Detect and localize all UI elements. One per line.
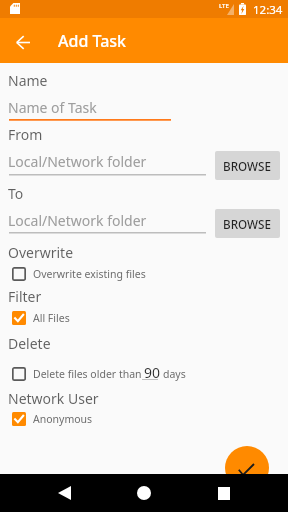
button[interactable]: Back [0, 18, 45, 63]
staticText: Add Task [58, 30, 127, 52]
staticText: Delete [8, 334, 51, 353]
button[interactable]: All Files [4, 307, 78, 329]
staticText: Overwrite existing files [33, 267, 146, 281]
staticText: 90 [144, 363, 161, 382]
staticText: Filter [8, 287, 42, 306]
button[interactable]: Confirm [225, 446, 269, 490]
staticText: Local/Network folder [8, 152, 147, 171]
button[interactable]: BROWSE [215, 151, 280, 180]
staticText: To [8, 184, 24, 203]
staticText: From [8, 125, 43, 144]
staticText: Network User [8, 389, 99, 408]
staticText: Anonymous [33, 412, 93, 426]
button[interactable]: Overwrite existing files [4, 263, 154, 285]
staticText: BROWSE [223, 158, 272, 174]
staticText: 12:34 [253, 2, 283, 18]
staticText: All Files [33, 311, 70, 325]
staticText: Name of Task [8, 98, 97, 117]
staticText: Overwrite [8, 243, 74, 262]
staticText: Local/Network folder [8, 211, 147, 230]
staticText: Delete files older than [33, 367, 142, 381]
button[interactable]: BROWSE [215, 209, 280, 238]
button[interactable]: Anonymous [4, 408, 101, 430]
button[interactable]: Delete files older than [4, 360, 194, 387]
button[interactable]: Back [45, 474, 83, 512]
staticText: days [163, 367, 186, 381]
button[interactable]: Home [125, 474, 163, 512]
staticText: BROWSE [223, 216, 272, 232]
button[interactable]: Recents [205, 474, 243, 512]
staticText: Name [8, 71, 48, 90]
staticText: LTE [219, 2, 229, 10]
